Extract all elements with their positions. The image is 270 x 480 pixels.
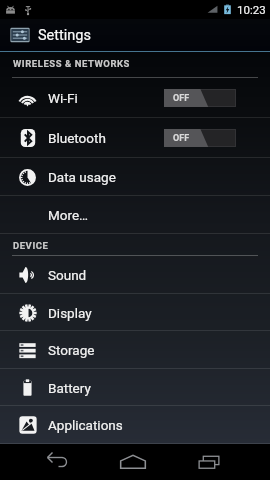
staticText: WIRELESS & NETWORKS xyxy=(13,58,130,69)
staticText: Storage xyxy=(48,342,95,358)
button[interactable]: Wi-Fi xyxy=(0,78,270,118)
staticText: Applications xyxy=(48,417,123,433)
button[interactable]: Display xyxy=(0,294,270,331)
button[interactable]: Sound xyxy=(0,256,270,294)
staticText: Settings xyxy=(38,27,91,44)
button[interactable]: Back xyxy=(21,444,95,479)
staticText: Sound xyxy=(48,267,87,283)
staticText: Bluetooth xyxy=(48,130,106,146)
staticText: Battery xyxy=(48,380,91,396)
button[interactable]: Bluetooth xyxy=(0,118,270,158)
button[interactable]: OFF xyxy=(164,89,236,107)
button[interactable]: More… xyxy=(0,196,270,234)
button[interactable]: Battery xyxy=(0,369,270,406)
button[interactable]: Storage xyxy=(0,331,270,369)
button[interactable]: OFF xyxy=(164,129,236,147)
staticText: OFF xyxy=(173,93,190,104)
button[interactable]: Home xyxy=(95,444,171,479)
staticText: Display xyxy=(48,305,92,321)
staticText: More… xyxy=(48,207,89,223)
staticText: Data usage xyxy=(48,169,116,185)
staticText: Wi-Fi xyxy=(48,90,78,106)
button[interactable]: Settings xyxy=(0,19,270,51)
staticText: OFF xyxy=(173,133,190,144)
staticText: 10:23 xyxy=(237,3,266,16)
button[interactable]: Applications xyxy=(0,406,270,444)
button[interactable]: Recent apps xyxy=(171,444,247,479)
staticText: DEVICE xyxy=(13,240,49,251)
button[interactable]: Data usage xyxy=(0,158,270,196)
